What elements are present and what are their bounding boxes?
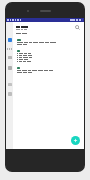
button[interactable]	[15, 38, 82, 47]
button[interactable]: More	[7, 48, 12, 50]
button[interactable]	[15, 49, 82, 64]
button[interactable]	[15, 66, 82, 75]
button[interactable]: Notes	[8, 38, 12, 42]
button[interactable]: Settings	[8, 66, 12, 70]
button[interactable]: New note	[71, 136, 80, 145]
button[interactable]	[16, 33, 81, 36]
button[interactable]: Search	[74, 24, 81, 31]
button[interactable]: Trash	[8, 92, 12, 96]
